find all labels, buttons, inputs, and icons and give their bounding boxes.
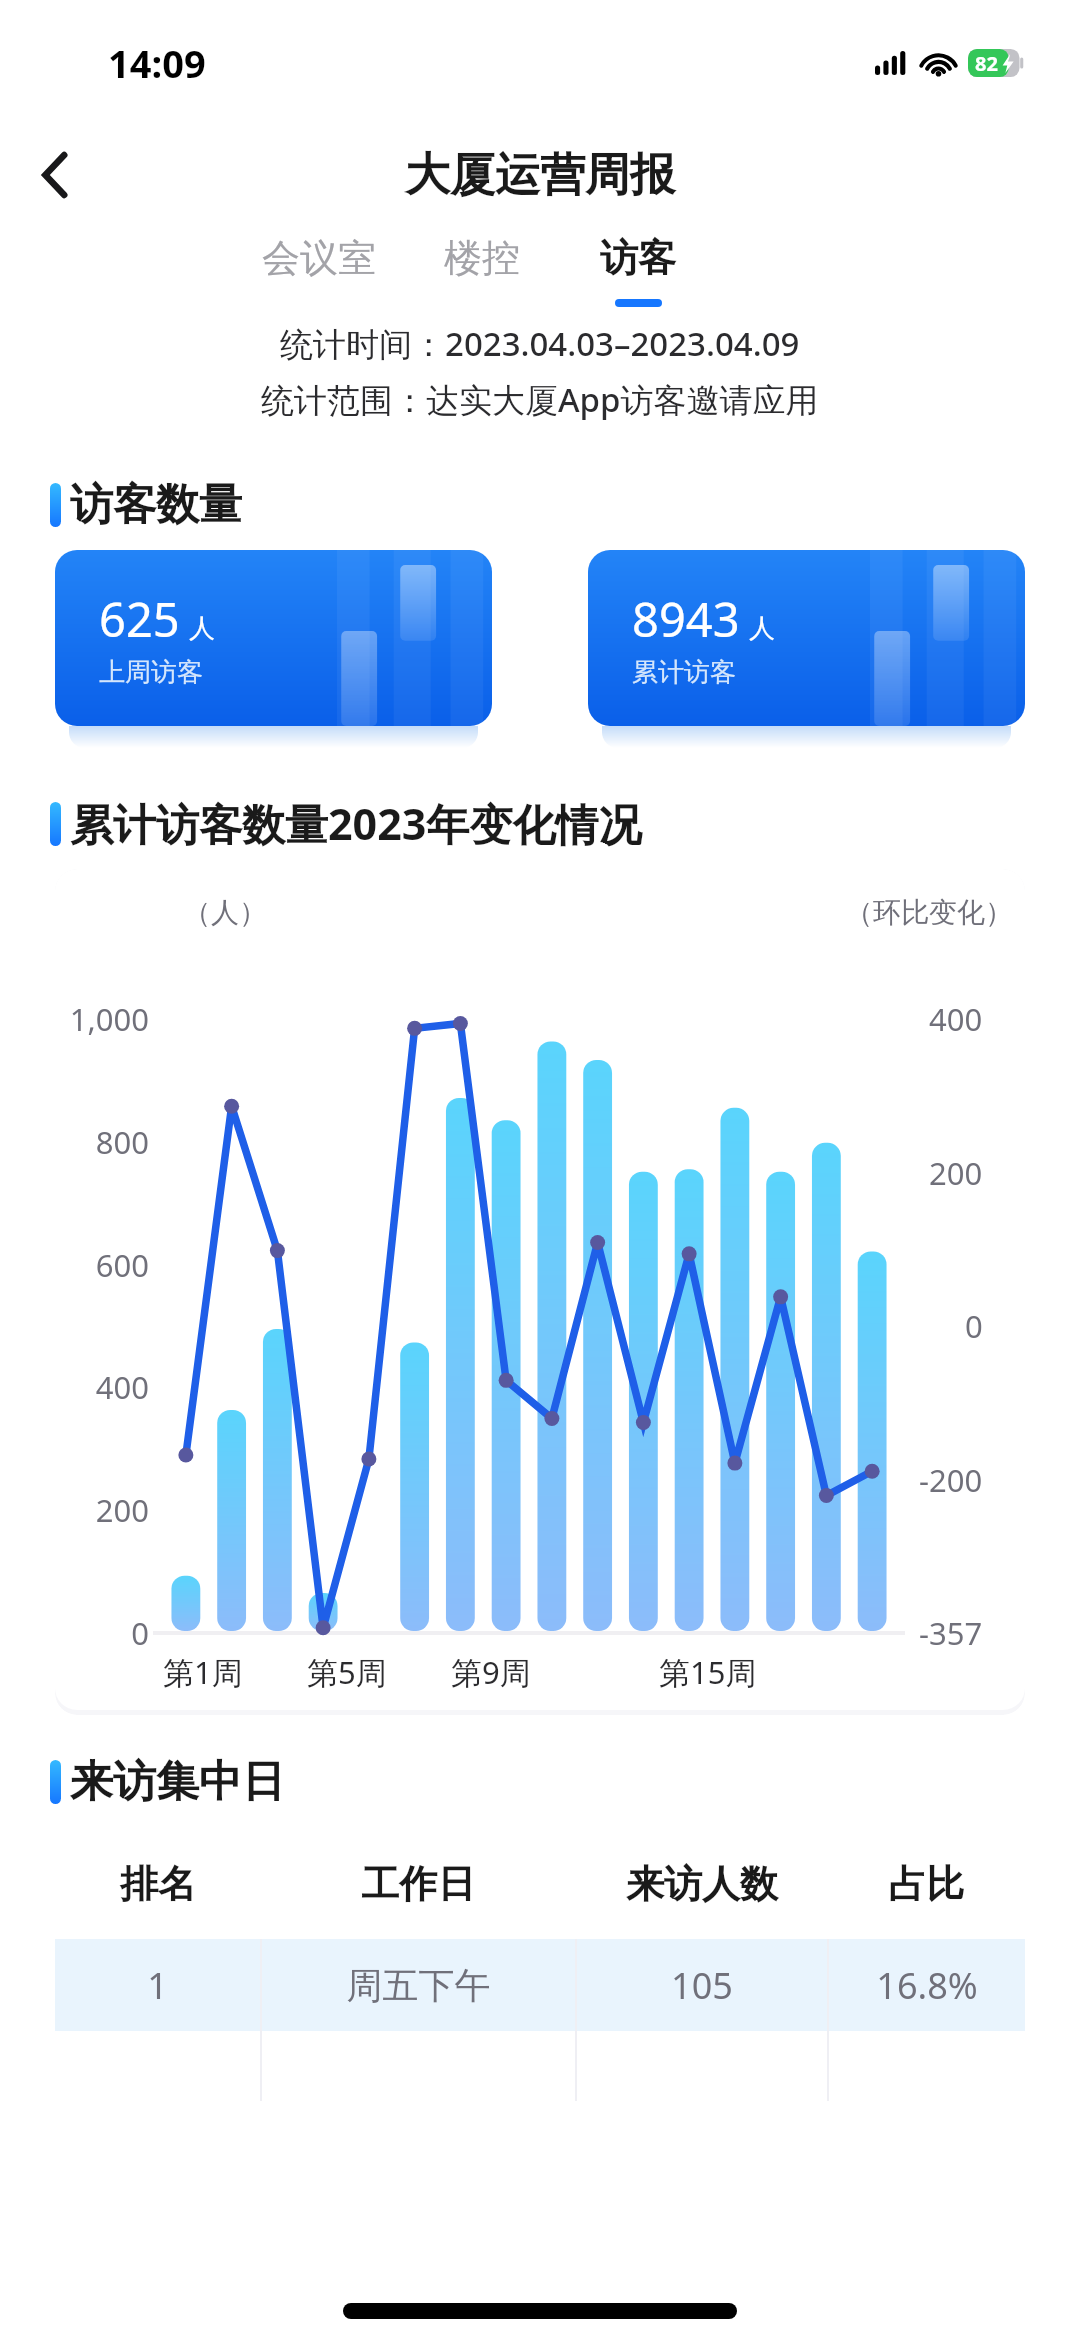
- button[interactable]: 1: [55, 1939, 1025, 2031]
- staticText: 200: [929, 1152, 983, 1194]
- staticText: 楼控: [444, 234, 520, 282]
- staticText: -357: [919, 1612, 983, 1654]
- button[interactable]: 楼控: [444, 234, 520, 307]
- staticText: 统计时间：2023.04.03–2023.04.09: [280, 321, 800, 366]
- staticText: 105: [577, 1961, 827, 2010]
- button[interactable]: 会议室: [262, 234, 376, 307]
- staticText: 会议室: [262, 234, 376, 282]
- staticText: 14:09: [108, 37, 206, 89]
- staticText: 400: [55, 1366, 149, 1408]
- staticText: 来访集中日: [70, 1755, 285, 1809]
- staticText: 周五下午: [262, 1963, 575, 2008]
- button[interactable]: 访客: [600, 234, 676, 307]
- staticText: 800: [55, 1121, 149, 1163]
- staticText: 大厦运营周报: [405, 147, 675, 204]
- button[interactable]: 8943: [588, 550, 1025, 726]
- staticText: 1: [55, 1961, 260, 2010]
- staticText: 人: [189, 612, 215, 645]
- staticText: 排名: [55, 1860, 261, 1908]
- staticText: 工作日: [261, 1860, 576, 1908]
- staticText: 82: [975, 50, 998, 77]
- staticText: 访客: [600, 234, 676, 282]
- staticText: 上周访客: [99, 656, 203, 689]
- staticText: 200: [55, 1489, 149, 1531]
- staticText: 统计范围：达实大厦App访客邀请应用: [261, 377, 819, 422]
- staticText: 1,000: [55, 998, 149, 1040]
- staticText: 8943: [632, 587, 740, 651]
- staticText: （环比变化）: [845, 895, 1013, 930]
- staticText: 访客数量: [70, 478, 242, 532]
- button[interactable]: 625: [55, 550, 492, 726]
- staticText: （人）: [183, 895, 267, 930]
- staticText: 第9周: [451, 1651, 531, 1693]
- staticText: 600: [55, 1244, 149, 1286]
- staticText: 人: [749, 612, 775, 645]
- staticText: 来访人数: [576, 1860, 828, 1908]
- staticText: 第5周: [307, 1651, 387, 1693]
- staticText: 占比: [828, 1860, 1025, 1908]
- staticText: 625: [99, 587, 180, 651]
- staticText: 第1周: [163, 1651, 243, 1693]
- staticText: 累计访客数量2023年变化情况: [70, 794, 642, 853]
- button[interactable]: Back: [22, 142, 88, 208]
- staticText: 0: [965, 1305, 983, 1347]
- staticText: 累计访客: [632, 656, 736, 689]
- staticText: 0: [55, 1612, 149, 1654]
- staticText: 第15周: [659, 1651, 757, 1693]
- staticText: -200: [919, 1459, 983, 1501]
- staticText: 400: [929, 998, 983, 1040]
- staticText: 16.8%: [829, 1961, 1025, 2010]
